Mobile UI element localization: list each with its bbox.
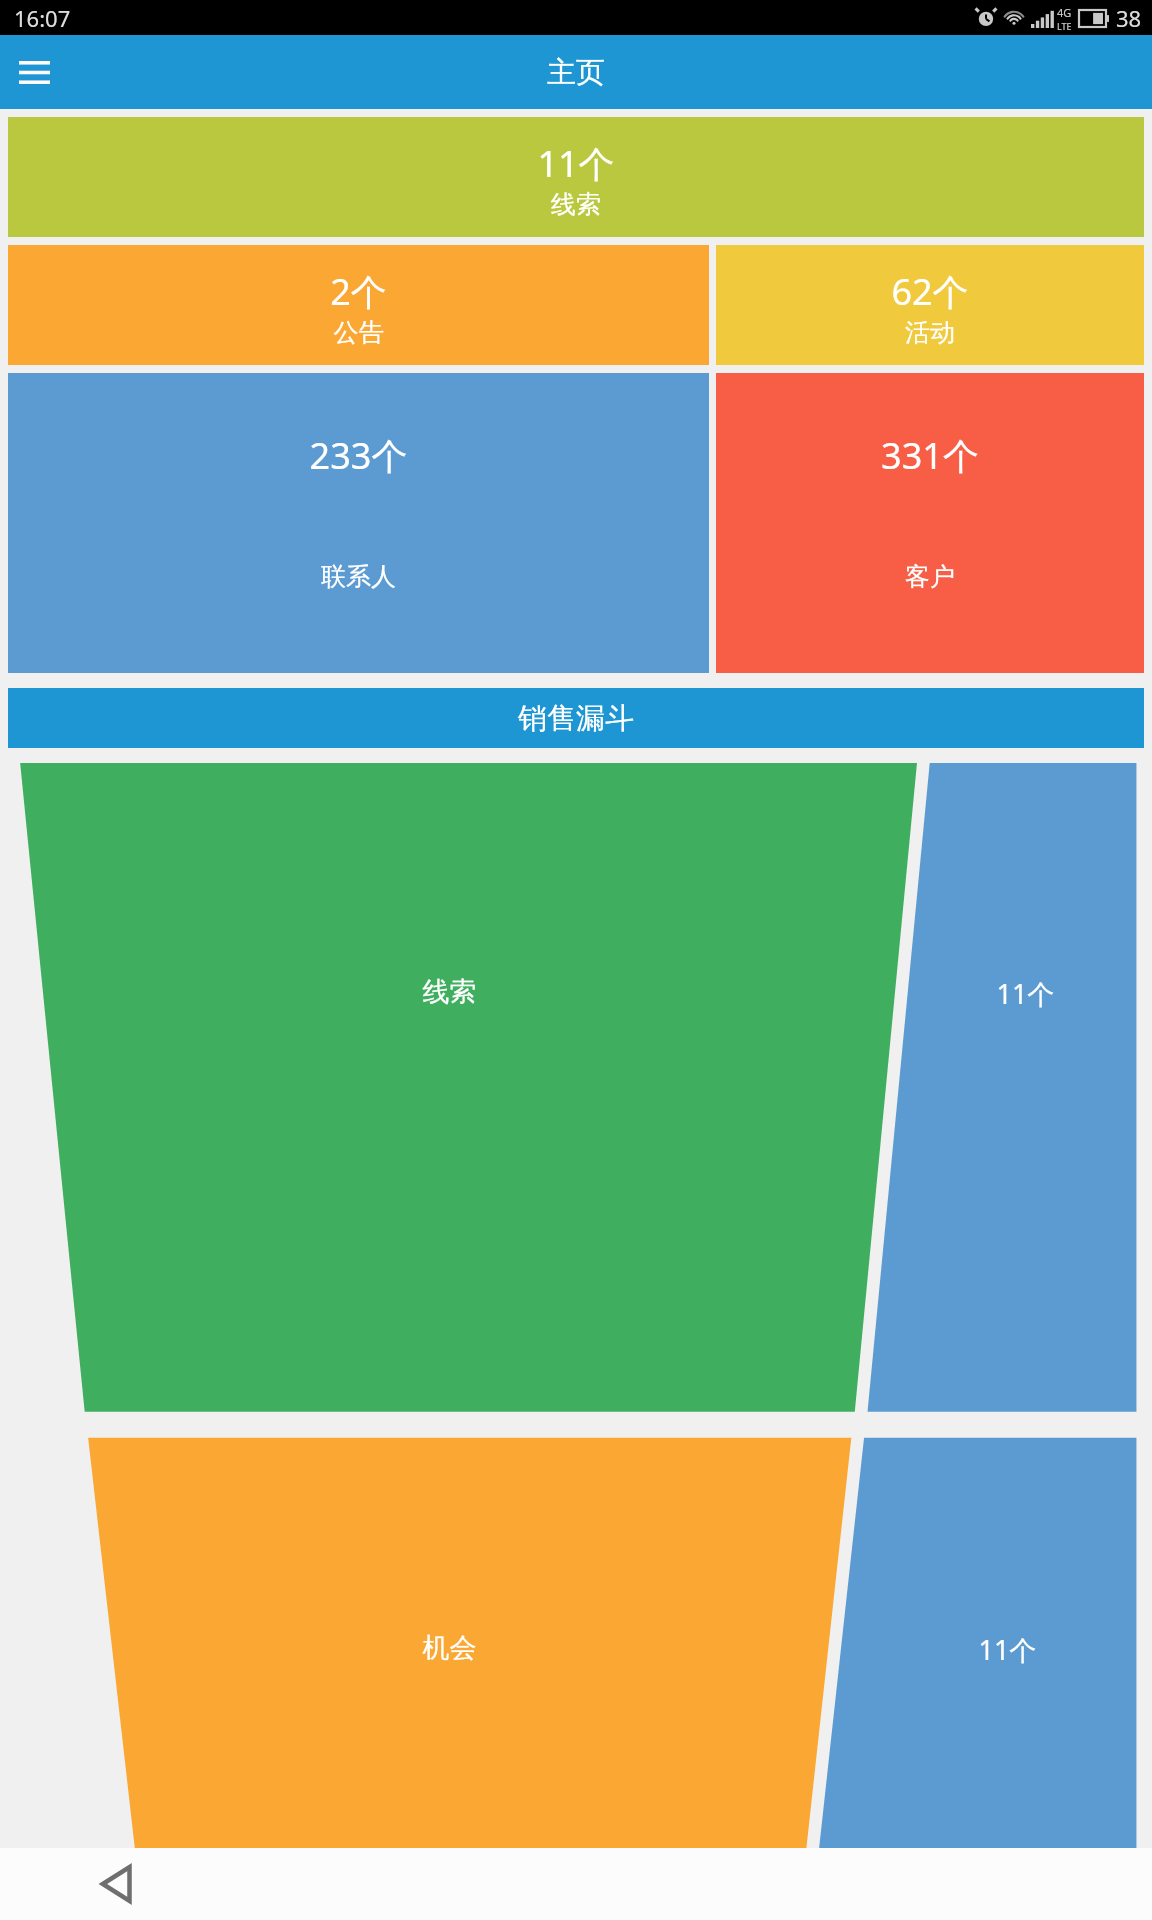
staticText: 11个 xyxy=(8,139,1144,188)
staticText: 联系人 xyxy=(8,561,709,592)
staticText: 公告 xyxy=(8,317,709,348)
button[interactable]: 62个 xyxy=(716,245,1144,365)
staticText: 331个 xyxy=(716,431,1144,480)
button[interactable]: 线索 xyxy=(0,763,1152,1848)
button[interactable]: 2个 xyxy=(8,245,709,365)
staticText: 线索 xyxy=(323,975,576,1009)
staticText: 4G xyxy=(1057,5,1072,20)
staticText: 主页 xyxy=(547,54,605,91)
button[interactable]: Back xyxy=(88,1856,144,1912)
staticText: 机会 xyxy=(323,1631,576,1665)
staticText: 62个 xyxy=(716,267,1144,316)
staticText: 38 xyxy=(1116,3,1142,33)
staticText: 233个 xyxy=(8,431,709,480)
button[interactable]: 233个 xyxy=(8,373,709,673)
staticText: 销售漏斗 xyxy=(518,700,634,737)
button[interactable]: 销售漏斗 xyxy=(8,688,1144,748)
staticText: 线索 xyxy=(8,189,1144,220)
staticText: LTE xyxy=(1057,20,1072,32)
staticText: 活动 xyxy=(716,317,1144,348)
button[interactable]: 331个 xyxy=(716,373,1144,673)
staticText: 客户 xyxy=(716,561,1144,592)
staticText: 2个 xyxy=(8,267,709,316)
button[interactable]: 11个 xyxy=(8,117,1144,237)
staticText: 11个 xyxy=(904,1631,1111,1668)
button[interactable]: Menu xyxy=(8,46,60,98)
staticText: 16:07 xyxy=(14,3,71,33)
staticText: 11个 xyxy=(922,975,1129,1012)
